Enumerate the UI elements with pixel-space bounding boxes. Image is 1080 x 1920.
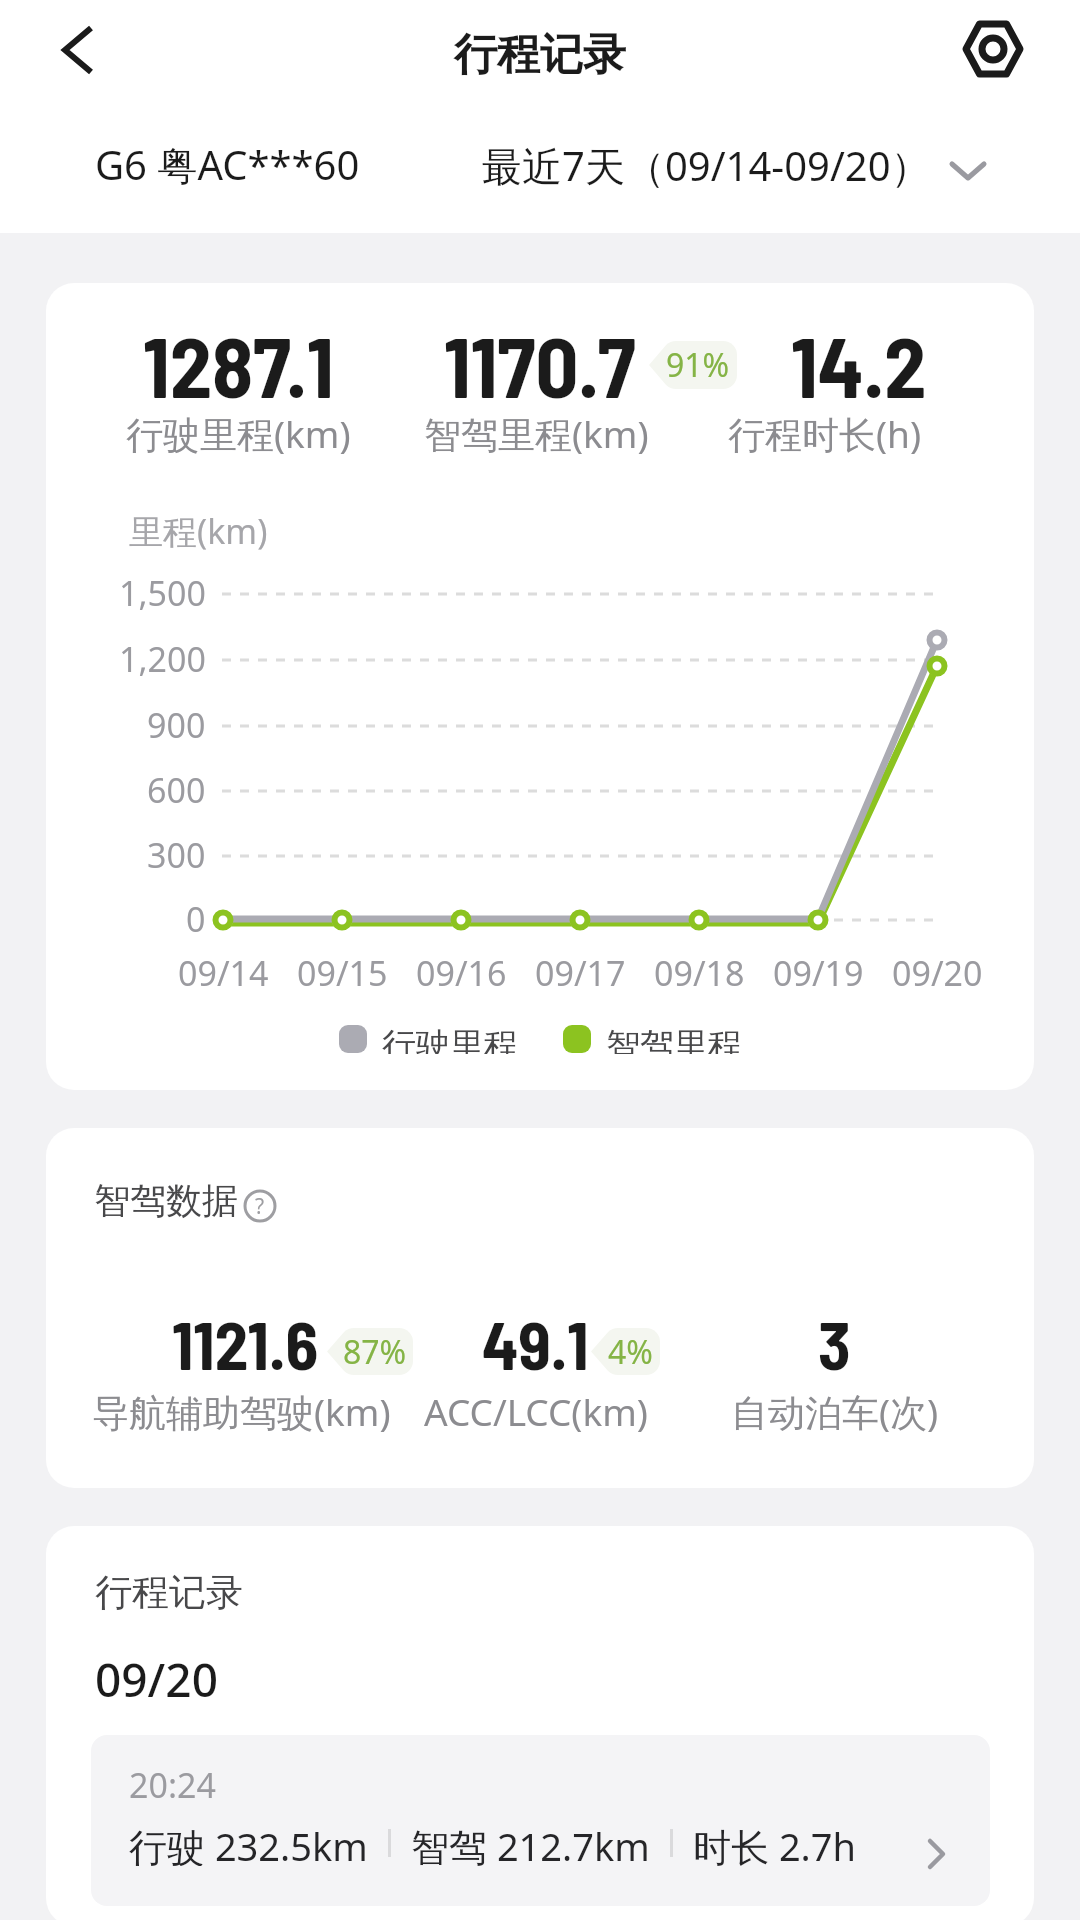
staticText: 智驾里程(km): [424, 408, 649, 459]
staticText: 行程记录: [454, 28, 626, 82]
button[interactable]: [962, 18, 1024, 80]
staticText: 最近7天（09/14-09/20）: [482, 138, 931, 193]
staticText: 900: [147, 702, 206, 748]
staticText: 1121.6: [172, 1303, 319, 1383]
staticText: 09/18: [654, 950, 745, 996]
staticText: 09/15: [297, 950, 388, 996]
button[interactable]: [48, 14, 112, 86]
staticText: 行驶里程(km): [126, 408, 351, 459]
staticText: 行驶 232.5km: [129, 1820, 368, 1866]
button[interactable]: 最近7天（09/14-09/20）: [470, 130, 1010, 200]
staticText: 14.2: [791, 314, 927, 415]
staticText: 1287.1: [143, 314, 334, 415]
staticText: 1,200: [119, 636, 206, 682]
staticText: 1,500: [119, 570, 206, 616]
staticText: 行程时长(h): [728, 408, 922, 459]
staticText: 0: [186, 896, 206, 942]
staticText: 智驾 212.7km: [411, 1820, 650, 1866]
staticText: 导航辅助驾驶(km): [92, 1386, 391, 1437]
staticText: ?: [255, 1192, 265, 1221]
staticText: 行程记录: [95, 1569, 243, 1616]
staticText: 09/17: [535, 950, 626, 996]
staticText: 1170.7: [444, 314, 636, 415]
staticText: 3: [818, 1303, 851, 1383]
staticText: 时长 2.7h: [693, 1820, 857, 1866]
staticText: 09/19: [773, 950, 864, 996]
button[interactable]: 20:24: [91, 1735, 990, 1906]
staticText: 智驾里程: [606, 1024, 742, 1054]
staticText: 行驶里程: [382, 1024, 518, 1054]
staticText: 里程(km): [129, 508, 268, 554]
staticText: 600: [147, 767, 206, 813]
staticText: 09/20: [892, 950, 983, 996]
staticText: 09/20: [95, 1648, 218, 1711]
staticText: G6 粤AC***60: [95, 137, 360, 192]
staticText: 87%: [343, 1330, 407, 1374]
staticText: 09/14: [178, 950, 269, 996]
staticText: 20:24: [129, 1762, 216, 1808]
staticText: ACC/LCC(km): [424, 1386, 648, 1436]
staticText: 09/16: [416, 950, 507, 996]
staticText: 智驾数据: [94, 1178, 238, 1223]
staticText: 300: [147, 832, 206, 878]
staticText: 91%: [666, 343, 730, 387]
staticText: 自动泊车(次): [731, 1386, 939, 1437]
staticText: 4%: [608, 1330, 653, 1374]
staticText: 49.1: [482, 1303, 589, 1383]
